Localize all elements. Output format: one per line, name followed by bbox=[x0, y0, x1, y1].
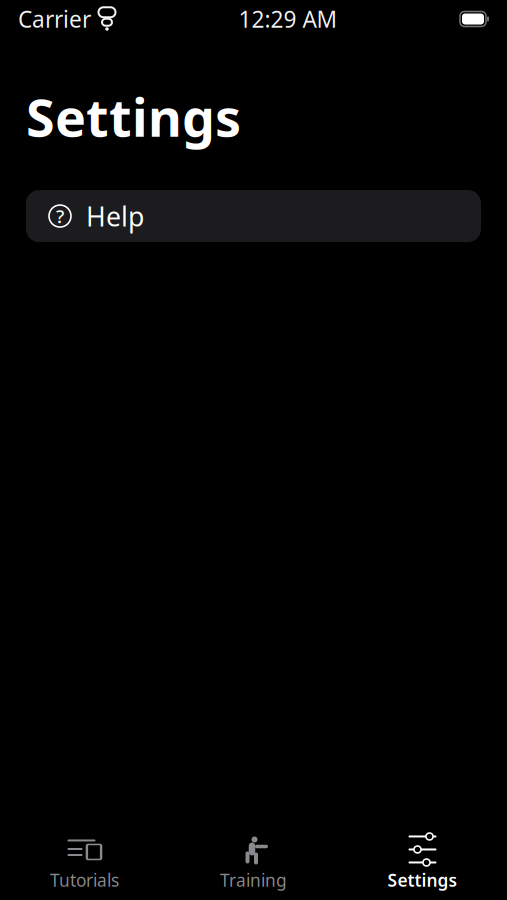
staticText: 12:29 AM bbox=[238, 4, 337, 34]
button[interactable]: Settings bbox=[338, 833, 507, 895]
button[interactable]: ? bbox=[26, 190, 481, 242]
staticText: Carrier bbox=[18, 4, 91, 34]
staticText: Training bbox=[220, 868, 287, 891]
staticText: Settings bbox=[26, 82, 241, 151]
staticText: Help bbox=[86, 198, 144, 234]
staticText: ? bbox=[56, 204, 64, 228]
staticText: Settings bbox=[387, 868, 457, 891]
button[interactable]: Training bbox=[169, 833, 338, 895]
button[interactable]: Tutorials bbox=[0, 833, 169, 895]
staticText: Tutorials bbox=[50, 868, 119, 891]
